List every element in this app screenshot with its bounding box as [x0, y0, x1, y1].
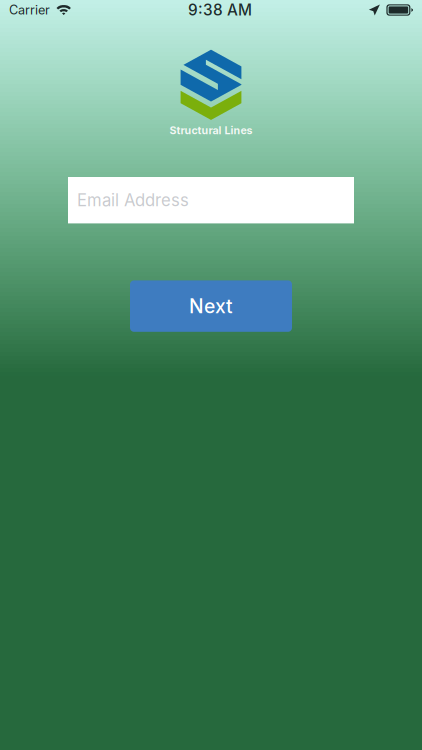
staticText: 9:38 AM: [188, 1, 252, 19]
staticText: Structural Lines: [169, 124, 252, 137]
staticText: Next: [189, 294, 233, 318]
button[interactable]: Next: [130, 280, 292, 332]
staticText: Email Address: [77, 190, 189, 210]
staticText: Carrier: [9, 2, 50, 18]
